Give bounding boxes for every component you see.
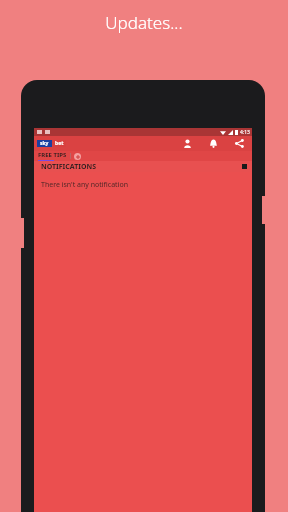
button[interactable]: Share: [233, 137, 246, 150]
staticText: There isn't any notification: [41, 180, 128, 190]
staticText: FREE TIPS: [38, 151, 67, 159]
button[interactable]: Sky Bet home: [37, 140, 66, 147]
button[interactable]: Account: [181, 137, 194, 150]
button[interactable]: FREE TIPS: [38, 151, 67, 161]
button[interactable]: Notifications: [207, 137, 220, 150]
staticText: NOTIFICATIONS: [41, 162, 97, 172]
button[interactable]: Add: [74, 153, 81, 160]
staticText: Updates...: [0, 11, 288, 34]
staticText: sky: [40, 140, 49, 147]
staticText: 4:13: [240, 129, 250, 136]
button[interactable]: NOTIFICATIONS: [34, 161, 252, 172]
staticText: bet: [55, 140, 64, 147]
